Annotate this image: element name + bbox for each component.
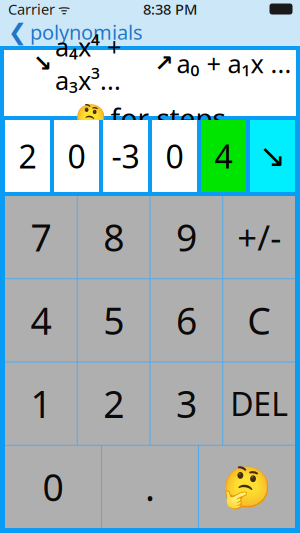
button[interactable]: ↗ xyxy=(150,47,296,80)
staticText: a₀ + a₁x ... xyxy=(176,47,291,80)
staticText: 7 xyxy=(30,212,51,262)
staticText: ↘ xyxy=(33,50,52,76)
button[interactable]: DEL xyxy=(223,362,295,445)
staticText: +/- xyxy=(237,214,281,260)
staticText: ❮ xyxy=(8,19,27,45)
button[interactable]: 2 xyxy=(5,120,50,192)
button[interactable]: 1 xyxy=(5,362,77,445)
staticText: 4 xyxy=(214,135,232,177)
staticText: ↗ xyxy=(154,50,173,76)
button[interactable]: 3 xyxy=(150,362,222,445)
button[interactable]: -3 xyxy=(103,120,148,192)
staticText: Carrier xyxy=(8,0,55,19)
staticText: a₄x⁴ + a₃x³... xyxy=(55,30,121,97)
staticText: ↘ xyxy=(259,138,286,174)
staticText: 0 xyxy=(165,135,183,177)
button[interactable]: +/- xyxy=(223,196,295,278)
staticText: 5 xyxy=(103,296,124,345)
button[interactable]: Show steps xyxy=(199,446,295,528)
button[interactable]: 4 xyxy=(201,120,246,192)
staticText: 4 xyxy=(30,296,51,345)
button[interactable]: 0 xyxy=(5,446,101,528)
button[interactable]: ↘ xyxy=(4,30,150,97)
button[interactable]: 7 xyxy=(5,196,77,278)
button[interactable]: . xyxy=(102,446,198,528)
staticText: 9 xyxy=(176,212,197,262)
button[interactable]: C xyxy=(223,279,295,361)
staticText: 8:38 PM xyxy=(143,0,197,19)
button[interactable]: 0 xyxy=(54,120,99,192)
staticText: for steps xyxy=(110,99,225,136)
staticText: DEL xyxy=(230,382,288,425)
button[interactable]: 2 xyxy=(78,362,150,445)
staticText: C xyxy=(247,296,271,345)
staticText: 3 xyxy=(176,379,197,428)
button[interactable]: ❮ xyxy=(0,15,151,49)
staticText: 6 xyxy=(176,296,197,345)
staticText: 1 xyxy=(30,379,51,428)
button[interactable]: ↘ xyxy=(250,120,295,192)
button[interactable]: 8 xyxy=(78,196,150,278)
staticText: 0 xyxy=(67,135,85,177)
staticText: polynomials xyxy=(30,19,143,45)
staticText: . xyxy=(145,462,155,512)
button[interactable]: 9 xyxy=(150,196,222,278)
button[interactable]: 0 xyxy=(152,120,197,192)
staticText: -3 xyxy=(111,135,139,177)
staticText: 2 xyxy=(103,379,124,428)
button[interactable]: 6 xyxy=(150,279,222,361)
staticText: 🤔 xyxy=(74,103,106,132)
staticText: 8 xyxy=(103,212,124,262)
button[interactable]: 5 xyxy=(78,279,150,361)
staticText: 0 xyxy=(42,462,63,512)
staticText: 2 xyxy=(18,135,36,177)
button[interactable]: 4 xyxy=(5,279,77,361)
button[interactable]: 🤔 xyxy=(74,99,225,136)
staticText: ᯤ xyxy=(55,0,70,18)
staticText: 🤔 xyxy=(222,464,272,510)
